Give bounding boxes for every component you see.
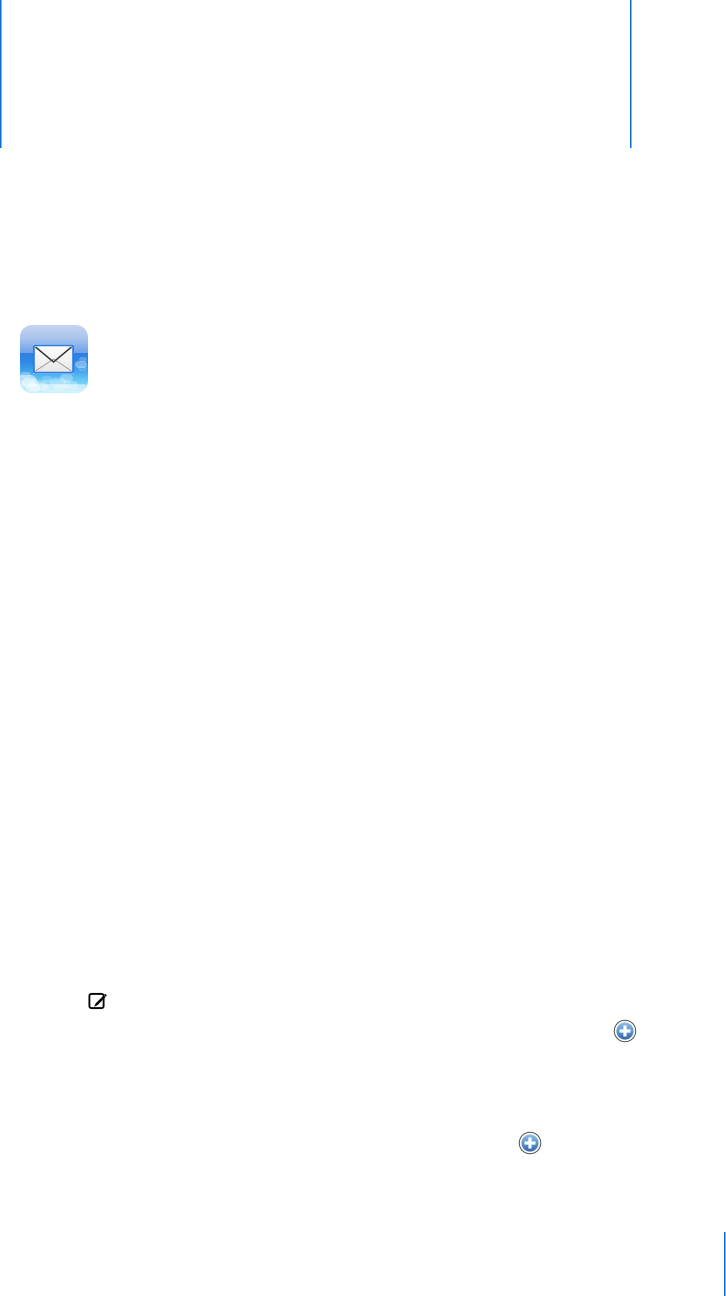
button[interactable]: Add: [614, 1020, 636, 1042]
button[interactable]: Compose: [86, 990, 107, 1011]
button[interactable]: Add: [519, 1132, 541, 1154]
button[interactable]: Mail: [20, 325, 88, 393]
